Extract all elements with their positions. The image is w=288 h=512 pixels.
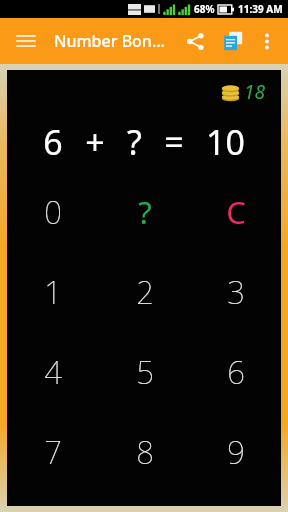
button[interactable]: ? [99,171,190,252]
staticText: 7 [44,431,62,473]
button[interactable]: 1 [7,252,99,332]
button[interactable]: Share [176,22,214,60]
button[interactable]: 9 [190,412,281,492]
staticText: 1 [44,271,62,313]
button[interactable]: 0 [7,171,99,252]
staticText: 6 [227,351,245,393]
staticText: ? [138,191,152,233]
staticText: 4 [44,351,62,393]
staticText: 11:39 AM [238,2,283,16]
button[interactable]: 6 [190,332,281,412]
staticText: 9 [227,431,245,473]
button[interactable]: 8 [99,412,190,492]
staticText: 8 [136,431,154,473]
button[interactable]: Notes [214,22,252,60]
staticText: 68% [194,2,215,16]
staticText: + [85,119,105,165]
button[interactable]: Open navigation menu [6,21,46,61]
button[interactable]: 7 [7,412,99,492]
staticText: 5 [136,351,154,393]
button[interactable]: C [190,171,281,252]
button[interactable]: 2 [99,252,190,332]
staticText: 2 [136,271,154,313]
staticText: = [164,119,184,165]
staticText: 3 [227,271,245,313]
button[interactable]: 4 [7,332,99,412]
staticText: Number Bon... [54,30,165,52]
button[interactable]: More options [252,26,282,56]
button[interactable]: 5 [99,332,190,412]
staticText: ? [127,119,142,165]
button[interactable]: 3 [190,252,281,332]
staticText: 10 [206,119,245,165]
staticText: 18 [244,79,265,105]
staticText: 6 [43,119,63,165]
staticText: C [226,191,246,233]
staticText: 0 [44,191,62,233]
